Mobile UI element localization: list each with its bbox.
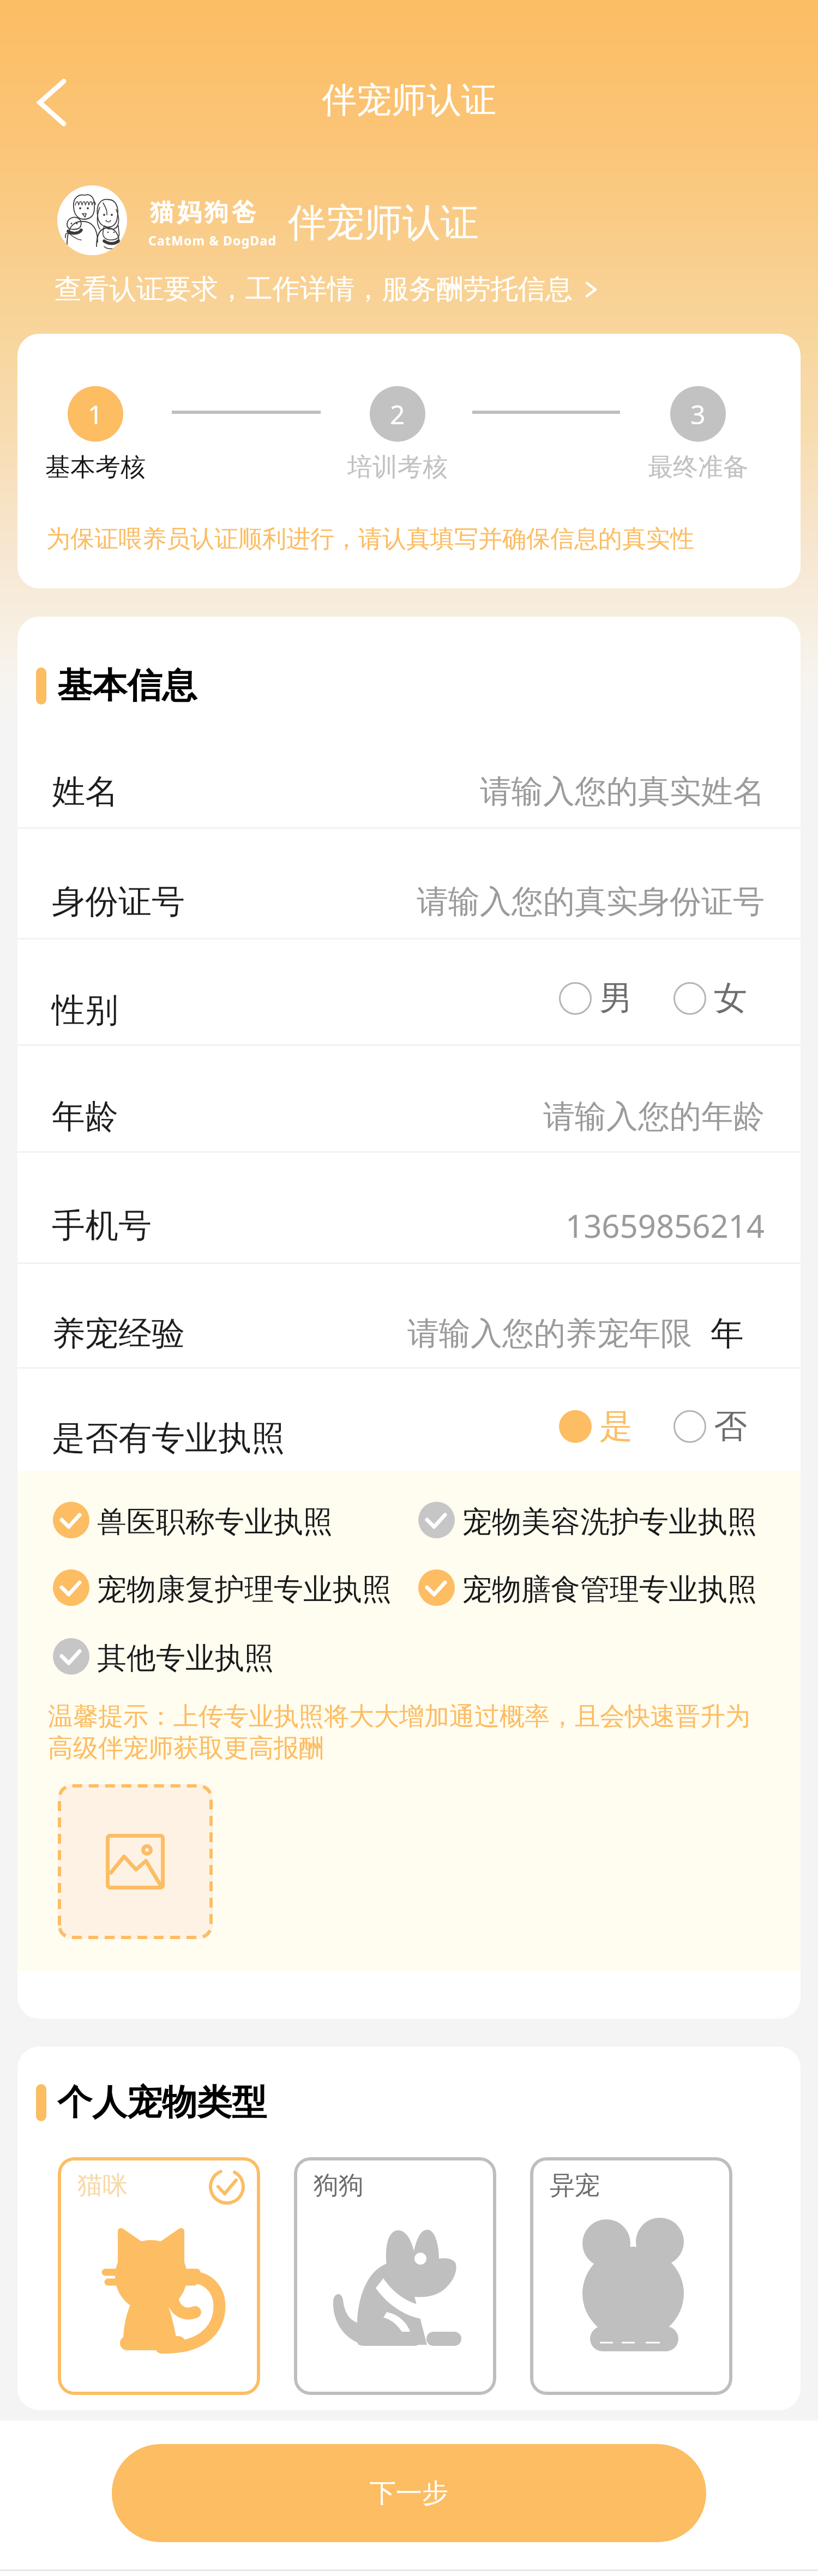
staticText: 男 <box>599 977 633 1019</box>
staticText: 年龄 <box>52 1096 118 1137</box>
staticText: 伴宠师认证 <box>288 199 479 247</box>
staticText: 手机号 <box>52 1205 152 1247</box>
staticText: 姓名 <box>52 771 118 812</box>
button[interactable]: 查看认证要求，工作详情，服务酬劳托信息 <box>55 272 601 306</box>
staticText: 异宠 <box>550 2170 600 2201</box>
button[interactable]: 2 <box>370 386 425 442</box>
staticText: 个人宠物类型 <box>57 2080 267 2124</box>
button[interactable]: 3 <box>670 386 726 442</box>
button[interactable]: 年龄 <box>17 1046 801 1151</box>
button[interactable]: 手机号 <box>17 1153 801 1262</box>
staticText: 兽医职称专业执照 <box>97 1503 333 1540</box>
staticText: 性别 <box>52 989 118 1031</box>
staticText: 其他专业执照 <box>97 1640 274 1677</box>
staticText: 2 <box>390 396 405 432</box>
staticText: 基本信息 <box>57 664 197 708</box>
button[interactable]: 其他专业执照 <box>53 1635 274 1677</box>
button[interactable]: 兽医职称专业执照 <box>53 1499 333 1540</box>
button[interactable]: 姓名 <box>17 719 801 827</box>
staticText: 3 <box>690 396 706 432</box>
staticText: 最终准备 <box>648 452 748 483</box>
button[interactable]: 养宠经验 <box>17 1264 801 1367</box>
staticText: 查看认证要求，工作详情，服务酬劳托信息 <box>55 272 573 306</box>
staticText: 温馨提示：上传专业执照将大大增加通过概率，且会快速晋升为高级伴宠师获取更高报酬 <box>48 1701 774 1764</box>
staticText: 猫妈狗爸 <box>148 197 257 227</box>
button[interactable]: Back <box>28 72 88 132</box>
staticText: 请输入您的年龄 <box>543 1097 765 1136</box>
staticText: 宠物康复护理专业执照 <box>97 1571 392 1608</box>
button[interactable]: 下一步 <box>112 2444 706 2542</box>
staticText: 伴宠师认证 <box>322 78 496 122</box>
button[interactable]: 狗狗 <box>294 2157 496 2395</box>
staticText: 宠物美容洗护专业执照 <box>462 1503 757 1540</box>
button[interactable]: Upload licence photo <box>58 1784 213 1939</box>
button[interactable]: 宠物膳食管理专业执照 <box>418 1567 757 1608</box>
staticText: 年 <box>711 1313 744 1355</box>
staticText: 请输入您的真实身份证号 <box>417 882 765 922</box>
staticText: 宠物膳食管理专业执照 <box>462 1571 757 1608</box>
staticText: 狗狗 <box>314 2170 364 2201</box>
button[interactable]: 猫咪 <box>58 2157 260 2395</box>
button[interactable]: 否 <box>673 1405 747 1447</box>
button[interactable]: 宠物康复护理专业执照 <box>53 1567 392 1608</box>
staticText: 女 <box>714 977 747 1019</box>
button[interactable]: 异宠 <box>530 2157 732 2395</box>
button[interactable]: 女 <box>673 977 747 1019</box>
staticText: CatMom & DogDad <box>148 232 277 249</box>
staticText: 基本考核 <box>45 452 146 483</box>
staticText: 下一步 <box>370 2477 448 2509</box>
staticText: 是否有专业执照 <box>52 1417 285 1459</box>
button[interactable]: 宠物美容洗护专业执照 <box>418 1499 757 1540</box>
button[interactable]: 性别 <box>17 940 801 1044</box>
button[interactable]: 身份证号 <box>17 829 801 938</box>
staticText: 否 <box>714 1405 747 1447</box>
staticText: 13659856214 <box>566 1204 765 1247</box>
staticText: 身份证号 <box>52 881 185 923</box>
staticText: 养宠经验 <box>52 1313 185 1355</box>
button[interactable]: 1 <box>68 386 123 442</box>
staticText: 1 <box>88 396 103 432</box>
button[interactable]: 男 <box>559 977 633 1019</box>
staticText: 为保证喂养员认证顺利进行，请认真填写并确保信息的真实性 <box>46 524 694 554</box>
button[interactable]: 是 <box>559 1405 633 1447</box>
button[interactable]: 是否有专业执照 <box>17 1369 801 1471</box>
staticText: 是 <box>599 1405 633 1447</box>
staticText: 请输入您的真实姓名 <box>480 772 765 811</box>
staticText: 猫咪 <box>77 2170 128 2201</box>
staticText: 请输入您的养宠年限 <box>407 1314 692 1353</box>
staticText: 培训考核 <box>347 452 448 483</box>
